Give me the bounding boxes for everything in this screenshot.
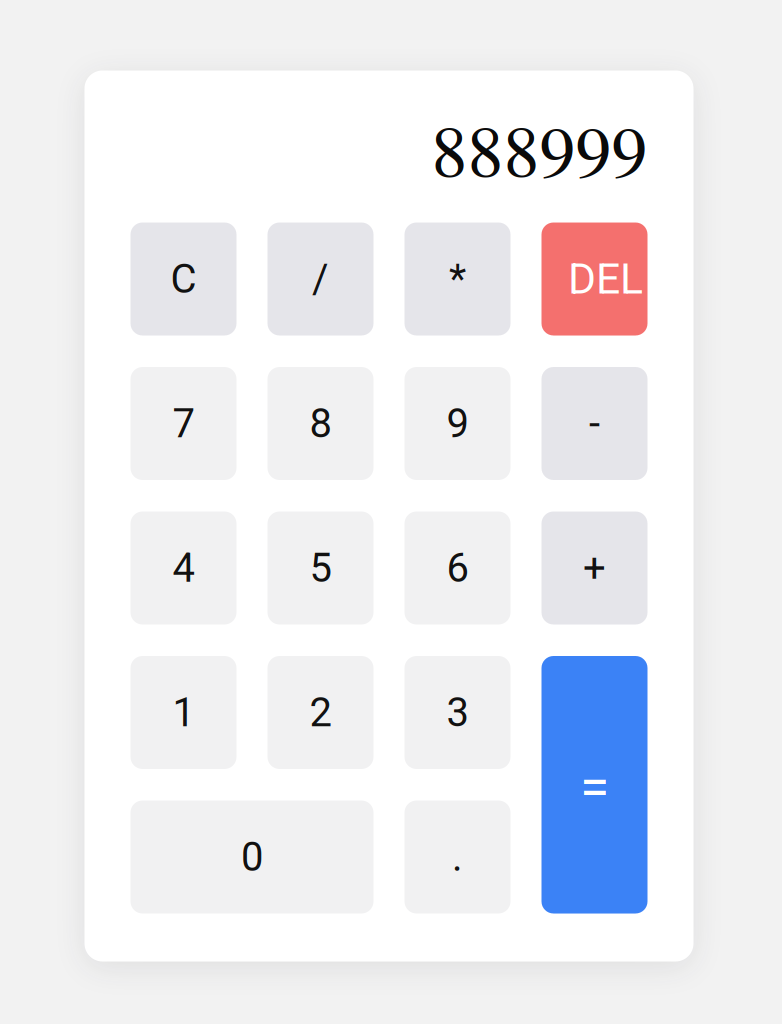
staticText: / [312, 256, 329, 302]
staticText: - [589, 400, 600, 447]
staticText: 5 [309, 545, 331, 591]
button[interactable]: C [130, 222, 236, 335]
button[interactable]: - [541, 367, 647, 480]
staticText: . [452, 834, 463, 880]
staticText: C [170, 256, 196, 302]
button[interactable]: . [404, 800, 510, 913]
staticText: 4 [172, 545, 194, 591]
button[interactable]: + [541, 511, 647, 624]
button[interactable]: DEL [541, 222, 647, 335]
staticText: * [449, 256, 466, 302]
button[interactable]: 3 [404, 656, 510, 769]
staticText: 8 [309, 400, 331, 447]
button[interactable]: 1 [130, 656, 236, 769]
button[interactable]: 5 [267, 511, 373, 624]
button[interactable]: 6 [404, 511, 510, 624]
staticText: 888999 [431, 119, 647, 191]
staticText: = [580, 756, 609, 819]
staticText: 3 [446, 689, 468, 736]
button[interactable]: 2 [267, 656, 373, 769]
button[interactable]: 0 [130, 800, 373, 913]
staticText: 0 [241, 834, 263, 880]
button[interactable]: * [404, 222, 510, 335]
button[interactable]: / [267, 222, 373, 335]
staticText: + [583, 545, 606, 591]
button[interactable]: 9 [404, 367, 510, 480]
staticText: 6 [446, 545, 468, 591]
button[interactable]: = [541, 656, 647, 913]
button[interactable]: 4 [130, 511, 236, 624]
staticText: 7 [172, 400, 194, 447]
button[interactable]: 8 [267, 367, 373, 480]
button[interactable]: 7 [130, 367, 236, 480]
staticText: 9 [446, 400, 468, 447]
staticText: DEL [568, 254, 643, 304]
staticText: 2 [309, 689, 331, 736]
staticText: 1 [172, 689, 194, 736]
